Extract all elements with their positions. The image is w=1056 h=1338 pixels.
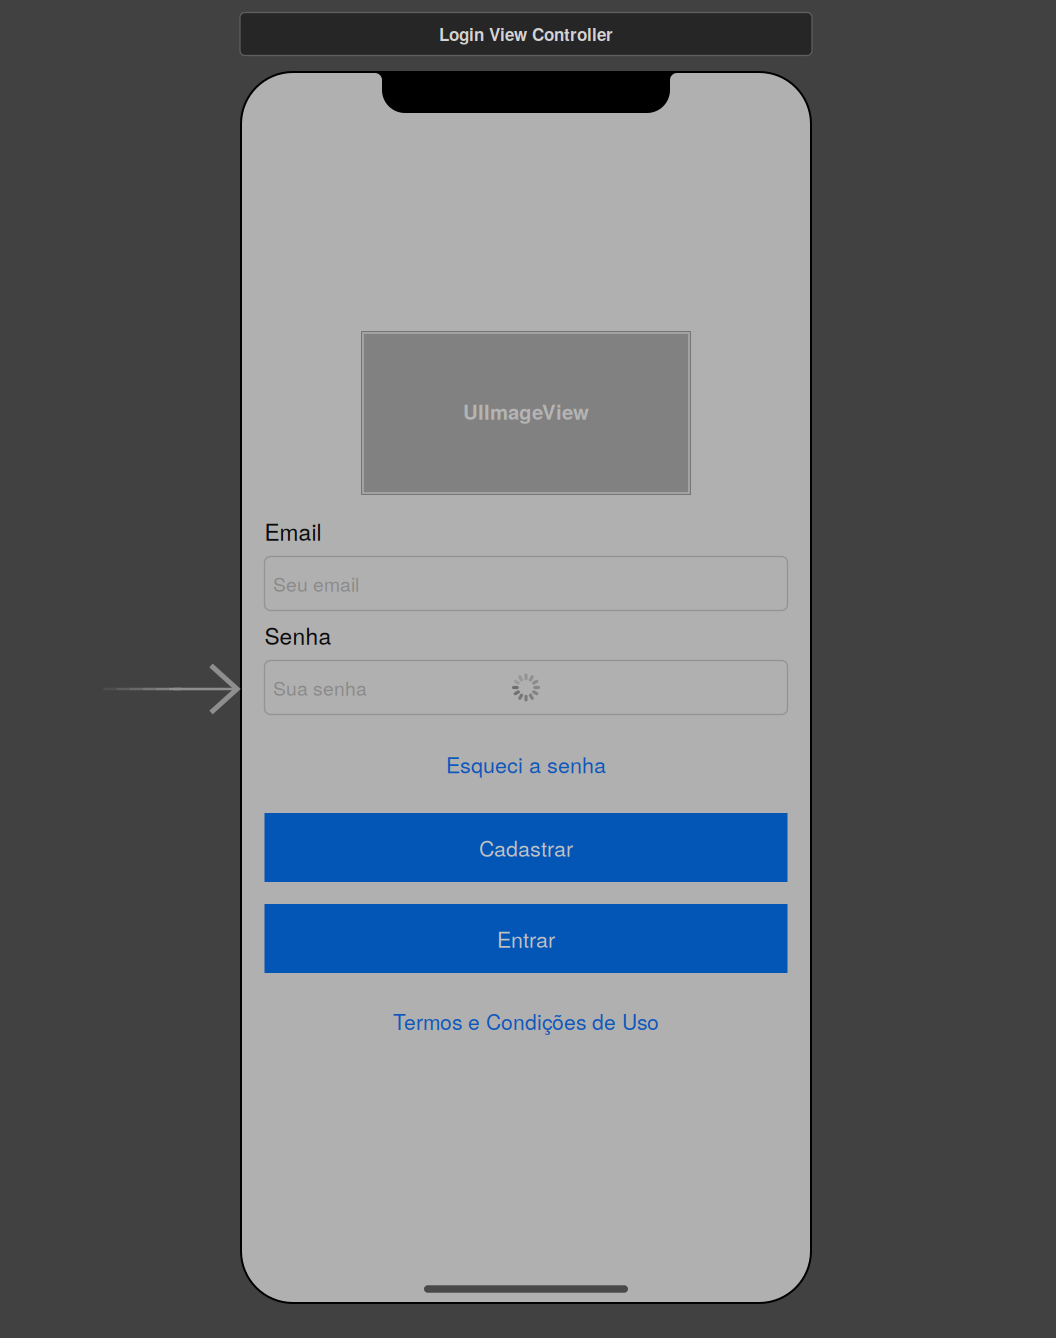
button[interactable]: Sua senha [264,660,787,714]
button[interactable]: Termos e Condições de Uso [264,1002,787,1040]
staticText: Termos e Condições de Uso [393,1006,659,1036]
staticText: Esqueci a senha [446,749,606,779]
staticText: Sua senha [273,674,367,701]
button[interactable]: Entrar [264,904,787,973]
staticText: UIImageView [463,397,589,426]
staticText: Seu email [273,570,359,597]
button[interactable]: Esqueci a senha [264,745,787,783]
staticText: Senha [264,619,331,651]
button[interactable]: Cadastrar [264,813,787,882]
staticText: Email [264,515,321,547]
staticText: Cadastrar [479,832,573,863]
staticText: Login View Controller [439,22,613,46]
button[interactable]: Seu email [264,556,787,610]
button[interactable]: Login View Controller [240,12,812,55]
staticText: Entrar [497,923,555,954]
